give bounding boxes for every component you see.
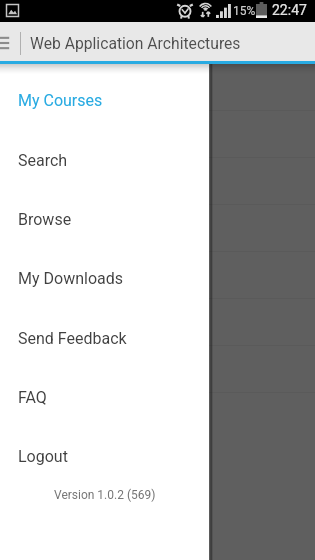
staticText: Send Feedback	[18, 329, 127, 348]
button[interactable]	[0, 393, 315, 440]
button[interactable]: My Courses	[0, 78, 209, 122]
button[interactable]	[0, 111, 315, 158]
button[interactable]: Browse	[0, 197, 209, 241]
button[interactable]: Open navigation drawer	[0, 22, 20, 64]
button[interactable]	[0, 299, 315, 346]
staticText: 15%	[233, 4, 256, 18]
button[interactable]: Search	[0, 138, 209, 182]
button[interactable]: My Downloads	[0, 256, 209, 300]
button[interactable]	[0, 252, 315, 299]
staticText: Web Application Architectures	[30, 34, 241, 52]
staticText: My Downloads	[18, 269, 123, 288]
staticText: 22:47	[272, 2, 307, 18]
button[interactable]	[0, 64, 315, 111]
button[interactable]: Logout	[0, 434, 209, 478]
button[interactable]	[0, 158, 315, 205]
button[interactable]	[0, 346, 315, 393]
button[interactable]: FAQ	[0, 375, 209, 419]
button[interactable]	[0, 205, 315, 252]
staticText: Version 1.0.2 (569)	[54, 488, 156, 502]
staticText: Browse	[18, 210, 72, 229]
staticText: Search	[18, 151, 68, 170]
button[interactable]: Send Feedback	[0, 316, 209, 360]
staticText: My Courses	[18, 91, 103, 110]
staticText: Logout	[18, 447, 68, 466]
staticText: FAQ	[18, 388, 47, 407]
